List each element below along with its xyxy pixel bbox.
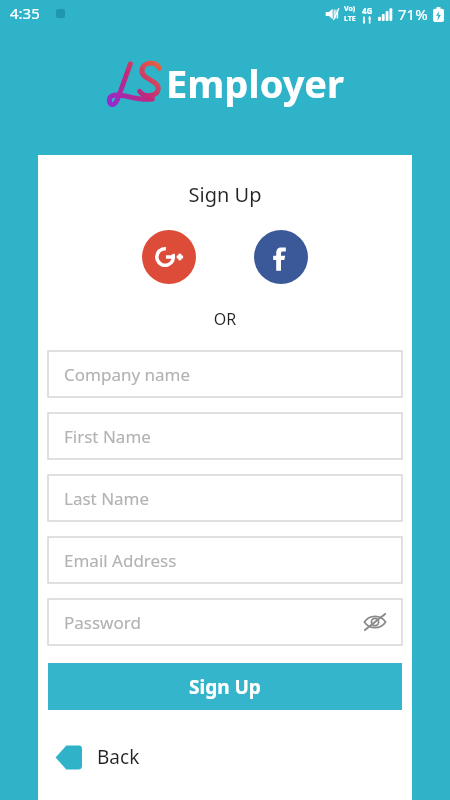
staticText: Sign Up	[189, 674, 261, 700]
staticText: Company name	[64, 363, 191, 386]
staticText: Sign Up	[38, 181, 412, 208]
button[interactable]: Back	[48, 737, 402, 777]
button[interactable]: Show password	[362, 609, 388, 635]
button[interactable]: Sign Up	[48, 663, 402, 710]
staticText: Back	[97, 744, 140, 770]
staticText: Email Address	[64, 549, 177, 572]
staticText: OR	[38, 308, 412, 330]
other: Back	[55, 744, 82, 771]
staticText: First Name	[64, 425, 151, 448]
staticText: 71%	[398, 4, 428, 24]
button[interactable]: Company name	[48, 351, 402, 397]
button[interactable]: Sign up with Google	[142, 230, 196, 284]
button[interactable]: Email Address	[48, 537, 402, 583]
staticText: Password	[64, 611, 141, 634]
button[interactable]: First Name	[48, 413, 402, 459]
button[interactable]: Password	[48, 599, 402, 645]
staticText: Last Name	[64, 487, 150, 510]
button[interactable]: Sign up with Facebook	[254, 230, 308, 284]
staticText: Employer	[166, 57, 345, 109]
staticText: Vo)	[344, 4, 356, 14]
staticText: 4:35	[10, 3, 40, 23]
staticText: LTE	[344, 14, 356, 24]
button[interactable]: Last Name	[48, 475, 402, 521]
staticText: 4G	[362, 5, 373, 16]
